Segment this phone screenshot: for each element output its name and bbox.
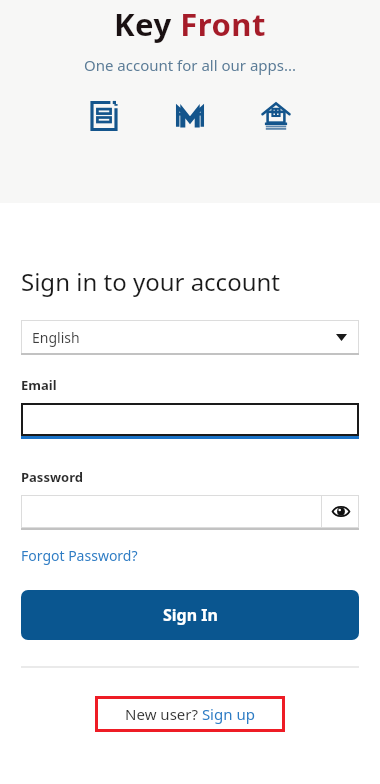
button[interactable]: Mail app — [168, 94, 212, 138]
button[interactable]: New user? Sign up — [95, 696, 285, 732]
button[interactable]: Sign In — [21, 590, 359, 640]
staticText: Email — [21, 376, 57, 394]
staticText: One account for all our apps... — [84, 55, 297, 75]
staticText: Key Front — [114, 3, 266, 45]
button[interactable]: English — [21, 320, 359, 355]
staticText: Sign In — [163, 604, 218, 626]
button[interactable] — [21, 495, 321, 528]
button[interactable]: Documents app — [82, 94, 126, 138]
staticText: Password — [21, 468, 83, 486]
button[interactable]: Home app — [254, 94, 298, 138]
staticText: New user? Sign up — [125, 704, 255, 724]
button[interactable]: Show password — [322, 495, 359, 528]
button[interactable] — [21, 403, 359, 439]
button[interactable]: Forgot Password? — [21, 546, 138, 565]
staticText: Forgot Password? — [21, 546, 138, 565]
staticText: English — [32, 328, 80, 347]
staticText: Sign in to your account — [21, 265, 280, 298]
